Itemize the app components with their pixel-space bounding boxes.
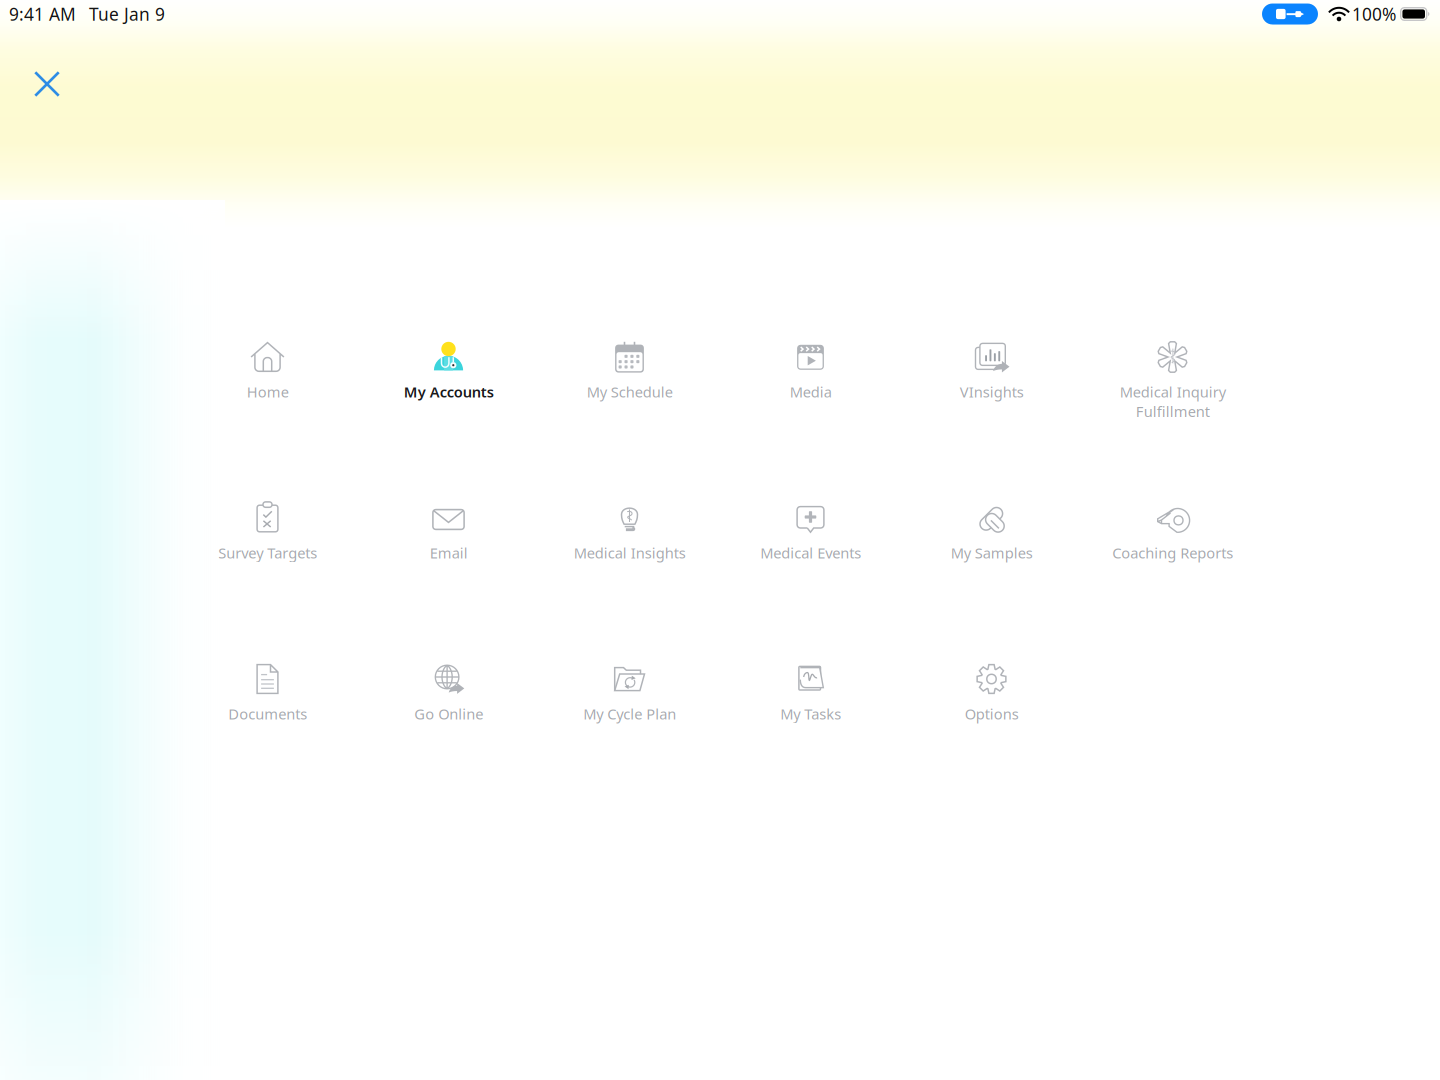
button[interactable]: Coaching Reports: [1082, 500, 1263, 602]
staticText: My Samples: [950, 543, 1032, 562]
staticText: Medical Events: [760, 543, 861, 562]
staticText: My Cycle Plan: [583, 704, 676, 723]
staticText: Medical Inquiry Fulfillment: [1119, 382, 1225, 421]
staticText: My Tasks: [780, 704, 841, 723]
button[interactable]: Documents: [177, 661, 358, 763]
button[interactable]: Survey Targets: [177, 500, 358, 602]
button[interactable]: Go Online: [358, 661, 539, 763]
staticText: 100%: [1352, 2, 1396, 25]
button[interactable]: My Samples: [901, 500, 1082, 602]
staticText: My Schedule: [586, 382, 672, 401]
staticText: Documents: [228, 704, 307, 723]
button[interactable]: My Accounts: [358, 339, 539, 441]
staticText: VInsights: [959, 382, 1023, 401]
button[interactable]: Email: [358, 500, 539, 602]
button[interactable]: My Tasks: [720, 661, 901, 763]
staticText: Go Online: [414, 704, 483, 723]
staticText: Home: [246, 382, 288, 401]
staticText: Email: [429, 543, 467, 562]
button[interactable]: Home: [177, 339, 358, 441]
staticText: Survey Targets: [218, 543, 317, 562]
staticText: Media: [789, 382, 831, 401]
staticText: Coaching Reports: [1112, 543, 1233, 562]
staticText: My Accounts: [403, 382, 493, 401]
button[interactable]: Medical Inquiry Fulfillment: [1082, 339, 1263, 441]
staticText: Tue Jan 9: [89, 2, 165, 25]
button[interactable]: My Schedule: [539, 339, 720, 441]
button[interactable]: Medical Insights: [539, 500, 720, 602]
button[interactable]: Options: [901, 661, 1082, 763]
staticText: Options: [964, 704, 1018, 723]
button[interactable]: VInsights: [901, 339, 1082, 441]
staticText: Medical Insights: [573, 543, 685, 562]
button[interactable]: Close: [22, 59, 72, 109]
button[interactable]: Media: [720, 339, 901, 441]
staticText: 9:41 AM: [9, 2, 76, 25]
button[interactable]: Medical Events: [720, 500, 901, 602]
button[interactable]: My Cycle Plan: [539, 661, 720, 763]
